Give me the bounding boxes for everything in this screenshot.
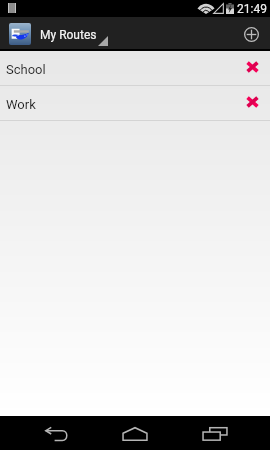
staticText: School — [6, 62, 234, 77]
button[interactable]: Delete School — [234, 51, 268, 85]
staticText: My Routes — [40, 28, 97, 42]
button[interactable]: Delete Work — [234, 86, 268, 120]
staticText: 21:49 — [237, 2, 267, 16]
button[interactable]: Back — [37, 421, 77, 447]
staticText: Work — [6, 97, 234, 112]
button[interactable]: Work — [0, 86, 270, 120]
button[interactable]: Home — [115, 421, 155, 447]
button[interactable]: Add route — [238, 17, 270, 49]
button[interactable]: My Routes — [0, 17, 238, 49]
button[interactable]: Recent apps — [195, 421, 235, 447]
button[interactable]: School — [0, 51, 270, 85]
